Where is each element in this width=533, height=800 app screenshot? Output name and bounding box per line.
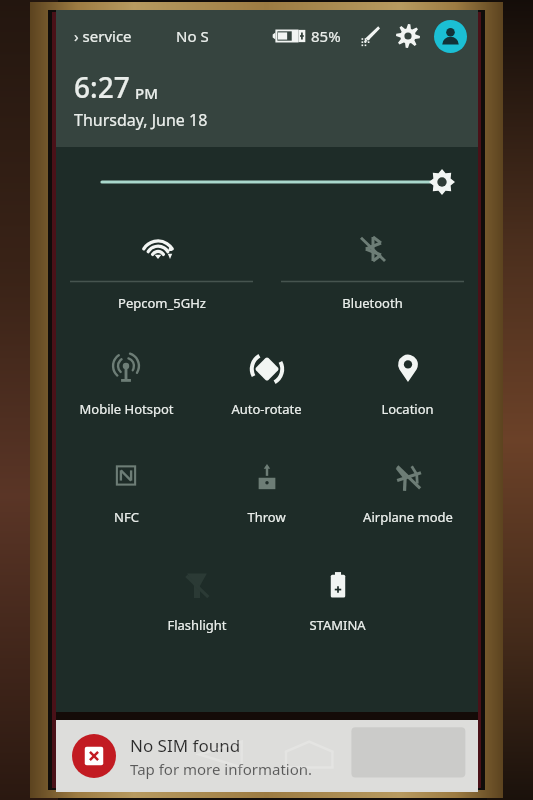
staticText: No SIM found (130, 734, 241, 757)
button[interactable]: Pepcom_5GHz (56, 217, 267, 332)
staticText: PM (135, 83, 158, 103)
staticText: Airplane mode (363, 508, 453, 526)
staticText: Location (381, 400, 434, 418)
button[interactable]: NFC (56, 440, 196, 548)
staticText: No S (176, 26, 209, 46)
staticText: STAMINA (309, 616, 366, 634)
button[interactable]: No SIM found (56, 720, 478, 792)
button[interactable]: Bluetooth (267, 217, 478, 332)
button[interactable]: User profile (432, 18, 468, 54)
button[interactable]: Settings (392, 20, 424, 52)
button[interactable]: Auto-rotate (196, 332, 337, 440)
button[interactable]: STAMINA (267, 548, 408, 656)
staticText: 6:27 (74, 68, 130, 106)
button[interactable]: Airplane mode (337, 440, 478, 548)
staticText: Flashlight (167, 616, 227, 634)
button[interactable]: Location (337, 332, 478, 440)
button[interactable]: Throw (196, 440, 337, 548)
button[interactable]: Mobile Hotspot (56, 332, 196, 440)
staticText: Bluetooth (342, 294, 403, 312)
staticText: 85% (311, 26, 341, 46)
button[interactable]: Edit quick settings (354, 21, 384, 51)
staticText: Tap for more information. (130, 759, 313, 779)
staticText: Throw (247, 508, 286, 526)
staticText: Auto-rotate (231, 400, 302, 418)
staticText: NFC (114, 508, 139, 526)
staticText: Pepcom_5GHz (118, 294, 206, 312)
staticText: Thursday, June 18 (74, 109, 208, 131)
staticText: › service (74, 26, 132, 46)
staticText: Mobile Hotspot (79, 400, 174, 418)
button[interactable]: Flashlight (126, 548, 267, 656)
button[interactable]: Brightness (56, 147, 478, 217)
